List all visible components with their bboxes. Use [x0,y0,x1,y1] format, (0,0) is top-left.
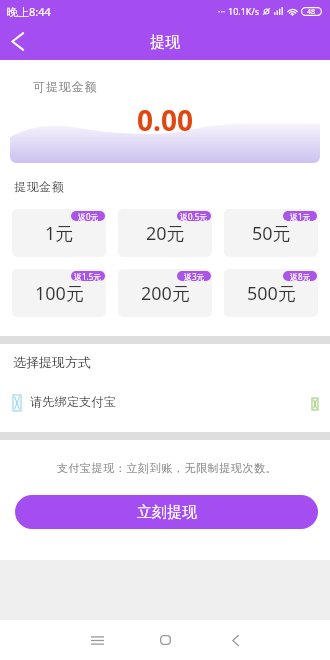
staticText: 48 [307,7,316,16]
staticText: 立刻提现 [137,503,197,522]
button[interactable]: 返回 [0,24,34,58]
staticText: 50元 [252,221,291,246]
staticText: 1元 [45,221,74,246]
button[interactable]: 50元 [224,209,318,257]
staticText: 晚上8:44 [7,4,51,19]
staticText: ··· [218,5,226,17]
staticText: 返0元 [78,211,99,221]
button[interactable]: 20元 [118,209,212,257]
staticText: 返1元 [290,211,311,221]
staticText: 请先绑定支付宝 [30,394,117,409]
staticText: 返0.5元 [180,211,208,221]
button[interactable]: 500元 [224,269,318,317]
button[interactable]: Recents [77,620,117,660]
button[interactable]: Home [145,620,185,660]
staticText: 0.00 [0,101,330,139]
staticText: 可提现金额 [33,79,98,94]
staticText: 支付宝提现：立刻到账，无限制提现次数。 [2,461,330,475]
button[interactable]: 200元 [118,269,212,317]
staticText: 20元 [146,221,185,246]
staticText: 返8元 [290,271,311,281]
staticText: 提现金额 [14,179,64,194]
staticText: 10.1K/s [228,5,260,17]
staticText: 500元 [247,281,296,306]
staticText: 返1.5元 [74,271,102,281]
button[interactable]: 100元 [12,269,106,317]
staticText: 返3元 [184,271,205,281]
button[interactable]: 请先绑定支付宝 [0,388,330,414]
button[interactable]: 立刻提现 [15,495,318,529]
button[interactable]: 1元 [12,209,106,257]
button[interactable]: Back [215,620,255,660]
staticText: 提现 [150,33,180,52]
staticText: 200元 [141,281,190,306]
staticText: 100元 [35,281,84,306]
staticText: 选择提现方式 [13,354,91,370]
